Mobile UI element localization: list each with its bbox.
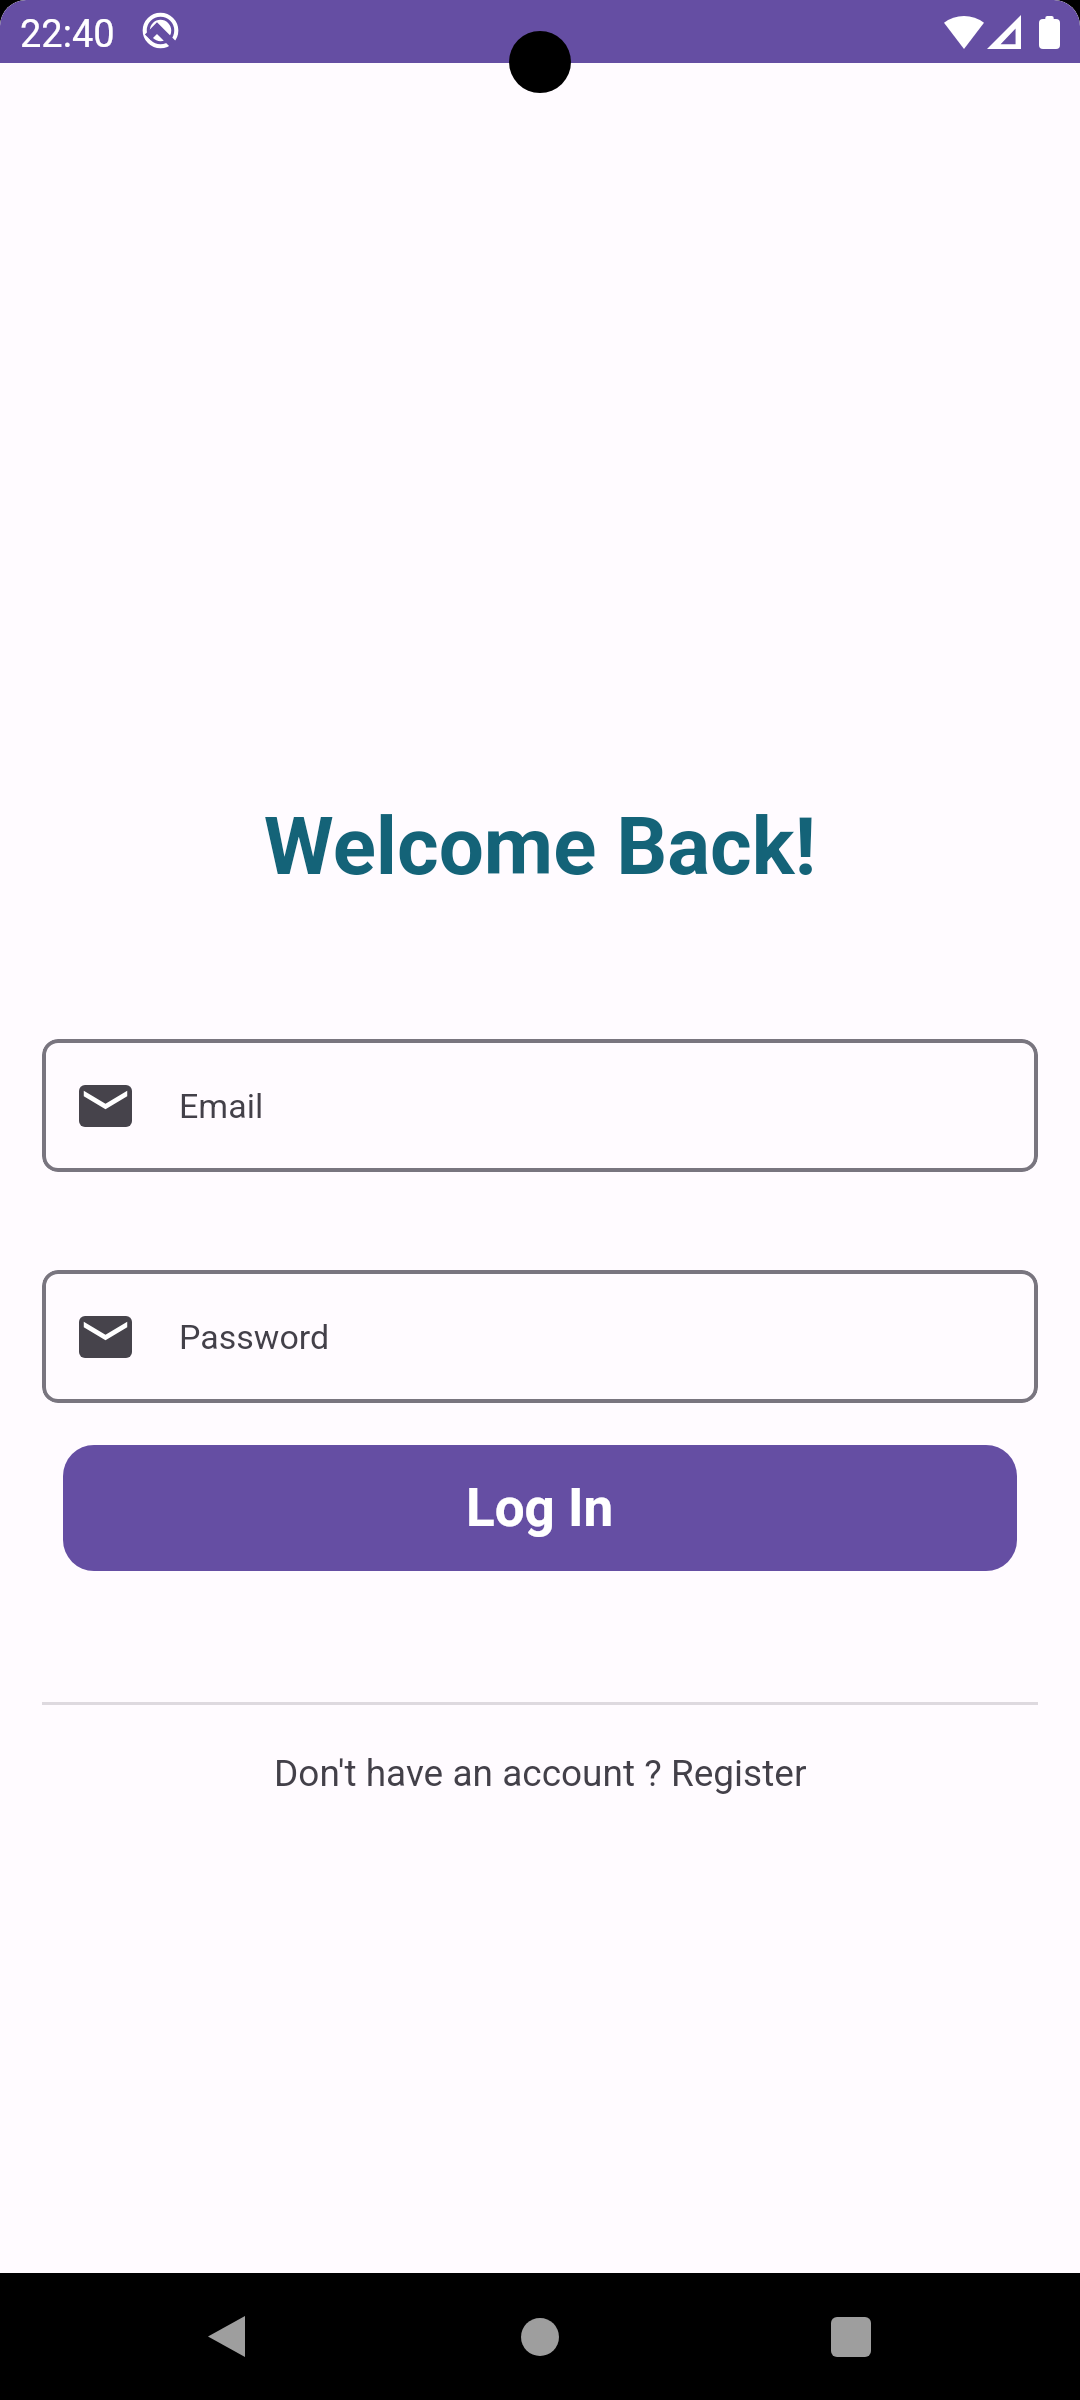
- staticText: Welcome Back!: [0, 800, 1080, 894]
- staticText: Don't have an account ? Register: [274, 1752, 807, 1795]
- staticText: 22:40: [20, 12, 115, 57]
- button[interactable]: Password: [42, 1270, 1038, 1403]
- button[interactable]: Don't have an account ? Register: [0, 1735, 1080, 1811]
- button[interactable]: Email: [42, 1039, 1038, 1172]
- staticText: Email: [179, 1086, 264, 1126]
- button[interactable]: Log In: [63, 1445, 1017, 1571]
- staticText: Log In: [466, 1477, 614, 1539]
- staticText: Password: [179, 1317, 330, 1357]
- button[interactable]: Recent apps: [801, 2273, 901, 2400]
- button[interactable]: Home: [490, 2273, 590, 2400]
- button[interactable]: Back: [176, 2273, 276, 2400]
